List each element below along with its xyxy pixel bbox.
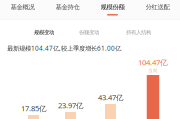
button[interactable]: 规模份额 (90, 0, 135, 19)
staticText: 104.47亿 (138, 57, 168, 68)
staticText: 持有人结构 (126, 29, 151, 36)
button[interactable]: 持有人结构 (126, 29, 151, 36)
staticText: 最新规模104.47亿,较上季度增长61.00亿 (7, 44, 121, 53)
staticText: 43.47亿 (98, 92, 123, 102)
staticText: 基金持仓 (55, 3, 79, 11)
staticText: 分红送配 (145, 3, 169, 11)
button[interactable]: 规模变动 (34, 29, 54, 36)
button[interactable]: 基金概况 (0, 0, 45, 19)
staticText: 份额变动 (79, 29, 99, 36)
staticText: 规模份额 (100, 3, 124, 11)
staticText: 23.97亿 (58, 100, 83, 110)
button[interactable]: 份额变动 (79, 29, 99, 36)
button[interactable]: 分红送配 (135, 0, 180, 19)
staticText: 17.85亿 (21, 103, 46, 113)
staticText: 规模变动 (34, 29, 54, 36)
staticText: 基金概况 (10, 3, 34, 11)
button[interactable]: 基金持仓 (45, 0, 90, 19)
staticText: 当前 (148, 68, 158, 73)
